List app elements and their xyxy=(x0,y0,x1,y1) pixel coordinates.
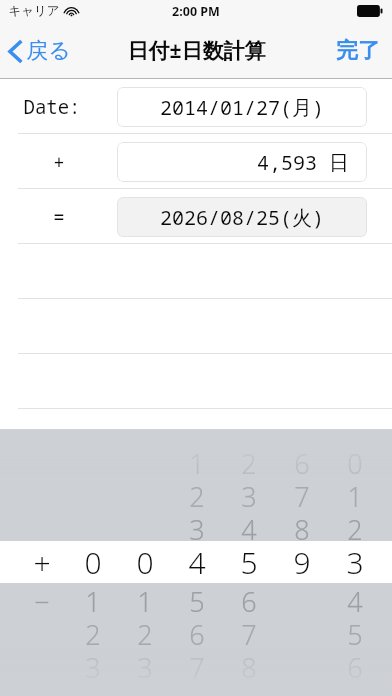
staticText: + xyxy=(53,149,65,175)
staticText: 4 xyxy=(241,511,257,543)
staticText: 3 xyxy=(241,478,257,510)
staticText: 0 xyxy=(347,445,363,477)
staticText: 2:00 PM xyxy=(172,3,220,20)
staticText: 1 xyxy=(189,445,205,477)
staticText: 1 xyxy=(85,583,101,615)
button[interactable]: 戻る xyxy=(0,31,81,71)
staticText: 7 xyxy=(189,649,205,681)
staticText: キャリア xyxy=(8,3,60,19)
staticText: Date: xyxy=(23,94,81,120)
staticText: 7 xyxy=(241,616,257,648)
button[interactable]: 完了 xyxy=(324,29,392,73)
staticText: 6 xyxy=(294,445,310,477)
staticText: + xyxy=(33,542,51,583)
staticText: 2026/08/25(火) xyxy=(160,204,324,231)
button[interactable]: = xyxy=(0,189,392,244)
staticText: 5 xyxy=(189,583,205,615)
staticText: 8 xyxy=(294,511,310,543)
staticText: 4,593 日 xyxy=(257,149,349,176)
staticText: 6 xyxy=(241,583,257,615)
staticText: 8 xyxy=(241,649,257,681)
staticText: 3 xyxy=(346,542,364,583)
staticText: 1 xyxy=(137,583,153,615)
staticText: 5 xyxy=(347,616,363,648)
staticText: 2 xyxy=(137,616,153,648)
staticText: 戻る xyxy=(26,37,71,65)
button[interactable]: Date: xyxy=(0,79,392,134)
staticText: 3 xyxy=(189,511,205,543)
staticText: 4 xyxy=(188,542,206,583)
staticText: − xyxy=(34,583,50,615)
button[interactable]: + xyxy=(0,134,392,189)
staticText: 2 xyxy=(85,616,101,648)
button[interactable]: 3 xyxy=(0,429,392,696)
staticText: 2 xyxy=(189,478,205,510)
staticText: = xyxy=(53,204,65,230)
staticText: 4 xyxy=(347,583,363,615)
staticText: 2014/01/27(月) xyxy=(160,94,324,121)
staticText: 7 xyxy=(294,478,310,510)
staticText: 3 xyxy=(137,649,153,681)
staticText: 3 xyxy=(85,649,101,681)
staticText: 0 xyxy=(84,542,102,583)
staticText: 6 xyxy=(189,616,205,648)
staticText: 6 xyxy=(347,649,363,681)
staticText: 9 xyxy=(293,542,311,583)
staticText: 0 xyxy=(136,542,154,583)
staticText: 1 xyxy=(347,478,363,510)
staticText: 5 xyxy=(240,542,258,583)
staticText: 2 xyxy=(347,511,363,543)
staticText: 完了 xyxy=(336,37,380,65)
staticText: 日付±日数計算 xyxy=(127,36,266,65)
staticText: 2 xyxy=(241,445,257,477)
